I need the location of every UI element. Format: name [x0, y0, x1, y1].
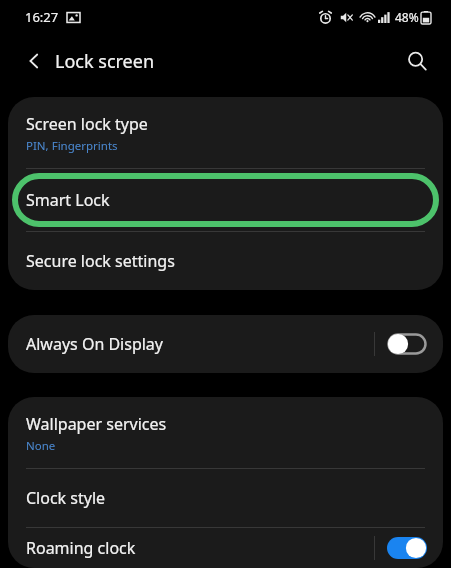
staticText: Wallpaper services: [26, 413, 167, 435]
button[interactable]: Secure lock settings: [8, 232, 443, 290]
button[interactable]: Always On Display: [8, 315, 443, 373]
staticText: 16:27: [25, 8, 59, 26]
button[interactable]: Smart Lock: [8, 169, 443, 231]
staticText: Roaming clock: [26, 537, 374, 559]
button[interactable]: Always On Display toggle: [387, 333, 427, 355]
button[interactable]: Roaming clock toggle: [387, 537, 427, 559]
button[interactable]: Roaming clock: [8, 528, 443, 568]
staticText: Smart Lock: [26, 189, 110, 211]
button[interactable]: Back: [14, 41, 54, 81]
staticText: Screen lock type: [26, 113, 148, 135]
staticText: PIN, Fingerprints: [26, 138, 118, 154]
button[interactable]: Wallpaper services: [8, 397, 443, 468]
button[interactable]: Clock style: [8, 469, 443, 527]
staticText: Clock style: [26, 487, 106, 509]
staticText: None: [26, 438, 56, 454]
button[interactable]: Search: [397, 41, 437, 81]
button[interactable]: Screen lock type: [8, 97, 443, 168]
staticText: 48%: [395, 9, 419, 25]
staticText: Always On Display: [26, 333, 374, 355]
staticText: Lock screen: [55, 49, 155, 74]
staticText: Secure lock settings: [26, 250, 175, 272]
